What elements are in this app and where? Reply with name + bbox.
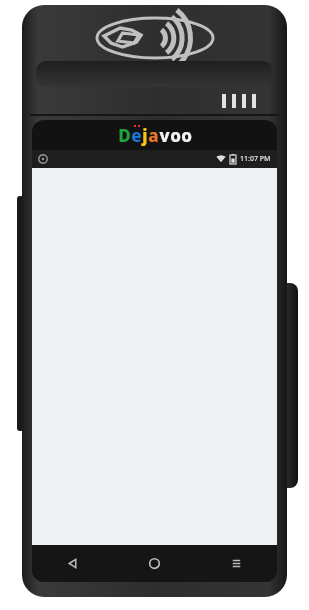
staticText: o — [181, 124, 192, 147]
staticText: v — [159, 124, 170, 147]
button[interactable]: Home — [113, 545, 195, 582]
staticText: e — [131, 124, 142, 147]
button[interactable]: Back — [32, 545, 113, 582]
staticText: D — [118, 124, 131, 147]
staticText: o — [170, 124, 181, 147]
button[interactable]: Recent apps — [195, 545, 277, 582]
staticText: j — [142, 124, 148, 147]
staticText: a — [148, 124, 159, 147]
staticText: 11:07 PM — [240, 154, 271, 164]
other: Side button — [276, 283, 298, 488]
